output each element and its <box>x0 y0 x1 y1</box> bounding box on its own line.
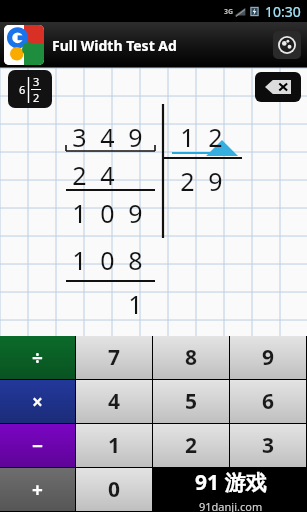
button[interactable]: Backspace <box>255 72 301 102</box>
button[interactable]: 1 <box>76 424 152 467</box>
staticText: 4 <box>100 158 115 188</box>
button[interactable]: 2 <box>153 424 229 467</box>
staticText: 3 <box>33 74 40 89</box>
button[interactable]: Operator − <box>0 424 75 467</box>
staticText: 1 <box>180 120 195 150</box>
button[interactable]: Operator × <box>0 380 75 423</box>
button[interactable]: 4 <box>76 380 152 423</box>
staticText: 4 <box>108 387 121 416</box>
staticText: Full Width Test Ad <box>52 36 177 55</box>
staticText: 1 <box>72 243 87 273</box>
staticText: 6 <box>262 387 275 416</box>
staticText: 9 <box>128 120 143 150</box>
button[interactable]: Open ad in browser <box>273 31 301 59</box>
staticText: 8 <box>128 243 143 273</box>
staticText: 2 <box>208 120 223 150</box>
staticText: 5 <box>185 387 198 416</box>
button[interactable]: 8 <box>153 336 229 379</box>
staticText: × <box>32 389 43 415</box>
staticText: 1 <box>128 287 143 317</box>
staticText: 91 游戏 <box>195 468 267 497</box>
button[interactable]: 9 <box>230 336 306 379</box>
button[interactable]: 5 <box>153 380 229 423</box>
button[interactable]: 3 <box>230 424 306 467</box>
staticText: 2 <box>72 158 87 188</box>
staticText: 3G <box>224 7 234 17</box>
staticText: 9 <box>208 164 223 194</box>
staticText: 9 <box>128 196 143 226</box>
button[interactable]: 0 <box>76 468 152 511</box>
staticText: 7 <box>108 343 121 372</box>
staticText: 91danji.com <box>199 499 263 512</box>
staticText: 6 <box>19 82 26 97</box>
staticText: 10:30 <box>265 2 301 21</box>
staticText: 1 <box>72 196 87 226</box>
staticText: 2 <box>33 90 40 105</box>
staticText: − <box>32 433 44 459</box>
staticText: 0 <box>100 243 115 273</box>
staticText: ÷ <box>32 345 43 371</box>
button[interactable]: 6 <box>230 380 306 423</box>
staticText: 4 <box>100 120 115 150</box>
button[interactable]: Problem type: division <box>8 70 52 108</box>
button[interactable]: Operator ÷ <box>0 336 75 379</box>
staticText: 2 <box>185 431 198 460</box>
button[interactable]: Operator + <box>0 468 75 511</box>
button[interactable]: 7 <box>76 336 152 379</box>
button[interactable]: Full Width Test Ad <box>0 22 307 68</box>
staticText: 2 <box>180 164 195 194</box>
staticText: 8 <box>185 343 198 372</box>
staticText: 3 <box>262 431 275 460</box>
staticText: 0 <box>100 196 115 226</box>
staticText: + <box>32 477 43 503</box>
staticText: 0 <box>108 475 121 504</box>
staticText: 9 <box>262 343 275 372</box>
staticText: 1 <box>108 431 121 460</box>
staticText: 3 <box>72 120 87 150</box>
